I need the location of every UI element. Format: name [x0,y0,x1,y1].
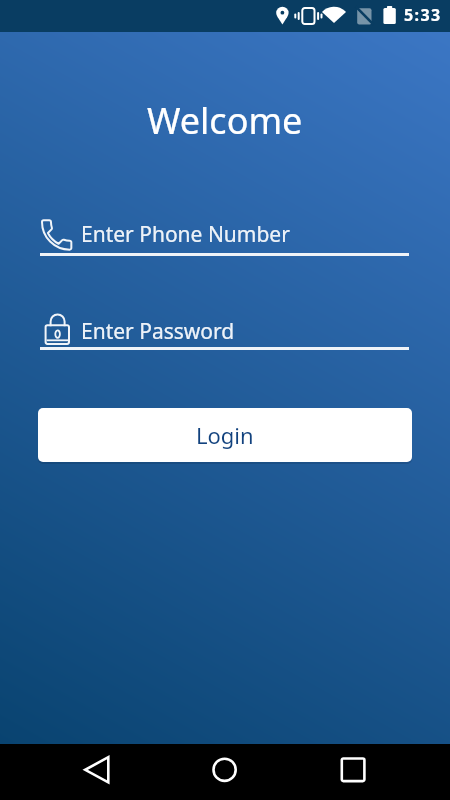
button[interactable]: Enter Password [36,306,410,354]
staticText: 5:33 [404,4,442,26]
button[interactable] [331,750,375,794]
button[interactable] [77,750,121,794]
staticText: Welcome [147,96,303,145]
button[interactable]: Enter Phone Number [36,214,410,260]
button[interactable]: Login [38,408,412,462]
staticText: Login [196,420,254,450]
button[interactable] [203,750,247,794]
staticText: Enter Password [81,317,235,346]
staticText: Enter Phone Number [81,220,290,249]
